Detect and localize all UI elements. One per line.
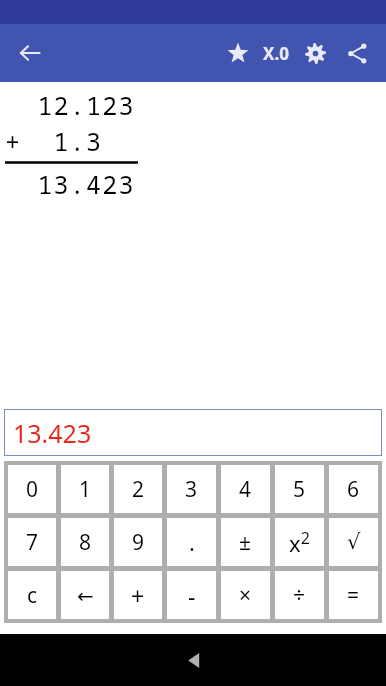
staticText: . xyxy=(189,527,195,557)
button[interactable]: 8 xyxy=(61,518,109,566)
button[interactable]: 7 xyxy=(8,518,56,566)
button[interactable]: Favorite xyxy=(218,33,258,73)
button[interactable]: 1 xyxy=(61,465,109,513)
staticText: c xyxy=(27,581,38,610)
staticText: X.0 xyxy=(263,42,289,65)
staticText: 4 xyxy=(239,475,252,504)
staticText: 5 xyxy=(293,475,306,504)
button[interactable]: + xyxy=(114,571,162,619)
button[interactable]: 2 xyxy=(114,465,162,513)
staticText: 9 xyxy=(132,528,145,557)
staticText: 0 xyxy=(26,475,39,504)
button[interactable]: 0 xyxy=(8,465,56,513)
staticText: = xyxy=(347,581,360,610)
button[interactable]: 13.423 xyxy=(4,409,382,456)
staticText: × xyxy=(239,581,252,610)
staticText: 6 xyxy=(347,475,360,504)
button[interactable]: ± xyxy=(221,518,270,566)
staticText: 12.123 xyxy=(5,88,135,122)
button[interactable]: × xyxy=(221,571,270,619)
staticText: 1 xyxy=(79,475,92,504)
staticText: ± xyxy=(239,528,252,557)
button[interactable]: Share xyxy=(336,32,378,74)
button[interactable]: 4 xyxy=(221,465,270,513)
button[interactable]: ← xyxy=(61,571,109,619)
staticText: + 1.3 xyxy=(5,124,103,158)
staticText: - xyxy=(188,580,196,611)
button[interactable]: 6 xyxy=(329,465,378,513)
staticText: 2 xyxy=(132,475,145,504)
staticText: 8 xyxy=(79,528,92,557)
button[interactable]: x2 xyxy=(275,518,324,566)
button[interactable]: √ xyxy=(329,518,378,566)
staticText: ← xyxy=(77,584,94,607)
staticText: 13.423 xyxy=(5,167,135,201)
button[interactable]: Back xyxy=(10,33,50,73)
staticText: + xyxy=(131,580,145,611)
staticText: √ xyxy=(347,530,361,554)
button[interactable]: Settings xyxy=(294,32,336,74)
button[interactable]: 5 xyxy=(275,465,324,513)
button[interactable]: X.0 xyxy=(258,31,294,75)
button[interactable]: c xyxy=(8,571,56,619)
staticText: ÷ xyxy=(293,581,306,610)
staticText: 13.423 xyxy=(13,416,92,450)
staticText: 3 xyxy=(185,475,198,504)
button[interactable]: = xyxy=(329,571,378,619)
button[interactable]: 9 xyxy=(114,518,162,566)
button[interactable]: . xyxy=(167,518,216,566)
button[interactable]: 3 xyxy=(167,465,216,513)
button[interactable]: Back xyxy=(163,634,223,686)
staticText: x2 xyxy=(289,527,310,558)
button[interactable]: - xyxy=(167,571,216,619)
staticText: 7 xyxy=(26,528,39,557)
button[interactable]: ÷ xyxy=(275,571,324,619)
